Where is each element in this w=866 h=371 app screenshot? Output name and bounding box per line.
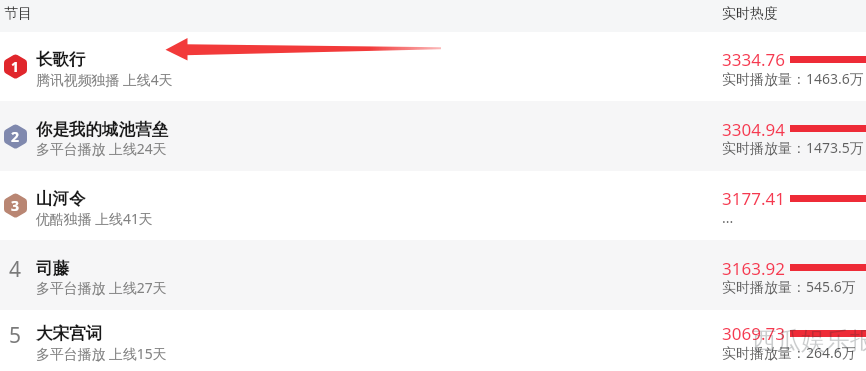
staticText: 大宋宫词 [36,323,636,344]
button[interactable]: 5 [0,310,866,371]
staticText: ... [722,208,734,227]
staticText: 2 [11,127,20,146]
staticText: 3163.92 [722,257,785,280]
staticText: 3304.94 [722,118,785,141]
staticText: 长歌行 [36,49,636,70]
staticText: 3334.76 [722,48,785,71]
button[interactable]: 4 [0,240,866,310]
staticText: 5 [9,321,22,346]
staticText: 腾讯视频独播 上线4天 [36,70,636,89]
staticText: 4 [9,255,22,280]
staticText: 多平台播放 上线15天 [36,344,636,363]
staticText: 实时播放量：1463.6万 [722,69,864,88]
staticText: 多平台播放 上线24天 [36,139,636,158]
staticText: 3177.41 [722,187,785,210]
other: 第3名 [4,193,27,218]
other: 第1名 [4,54,27,79]
button[interactable]: 节目 [0,0,700,32]
staticText: 实时播放量：264.6万 [722,343,856,362]
staticText: 实时播放量：1473.5万 [722,138,864,157]
staticText: 实时播放量：545.6万 [722,277,856,296]
staticText: 节目 [4,5,32,23]
staticText: 司藤 [36,258,636,279]
staticText: 多平台播放 上线27天 [36,278,636,297]
staticText: 3 [11,196,20,215]
staticText: 你是我的城池营垒 [36,119,636,140]
staticText: 山河令 [36,188,636,209]
staticText: 1 [11,57,20,76]
staticText: 西瓜娱乐报 [752,325,866,356]
staticText: 3069.73 [722,322,785,345]
button[interactable]: 第3名 [0,171,866,240]
other: 第2名 [4,124,27,149]
staticText: 优酷独播 上线41天 [36,209,636,228]
button[interactable]: 第1名 [0,32,866,101]
button[interactable]: 第2名 [0,101,866,171]
button[interactable]: 实时热度 [710,0,866,32]
staticText: 实时热度 [722,5,778,23]
